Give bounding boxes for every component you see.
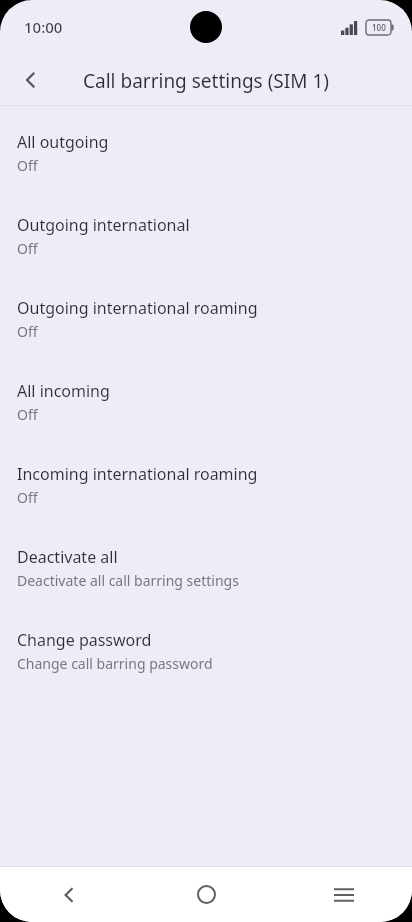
button[interactable]: Outgoing international roaming [0,287,412,370]
staticText: Off [17,239,38,258]
staticText: Incoming international roaming [17,463,258,485]
staticText: Call barring settings (SIM 1) [83,68,329,94]
staticText: 100 [372,22,386,33]
staticText: Change password [17,629,152,651]
button[interactable]: Change password [0,619,412,702]
button[interactable]: Deactivate all [0,536,412,619]
staticText: Change call barring password [17,654,213,673]
button[interactable]: All outgoing [0,121,412,204]
staticText: Deactivate all [17,546,118,568]
staticText: 10:00 [24,17,63,37]
button[interactable]: All incoming [0,370,412,453]
button[interactable]: Recent apps [275,867,412,922]
button[interactable]: Home [138,867,275,922]
staticText: Outgoing international [17,214,190,236]
button[interactable]: Outgoing international [0,204,412,287]
staticText: Off [17,156,38,175]
button[interactable]: Back [0,867,138,922]
button[interactable]: Incoming international roaming [0,453,412,536]
staticText: All outgoing [17,131,109,153]
staticText: Outgoing international roaming [17,297,258,319]
staticText: Off [17,488,38,507]
staticText: Deactivate all call barring settings [17,571,239,590]
staticText: Off [17,405,38,424]
staticText: Off [17,322,38,341]
button[interactable]: Back [7,56,55,104]
staticText: All incoming [17,380,110,402]
